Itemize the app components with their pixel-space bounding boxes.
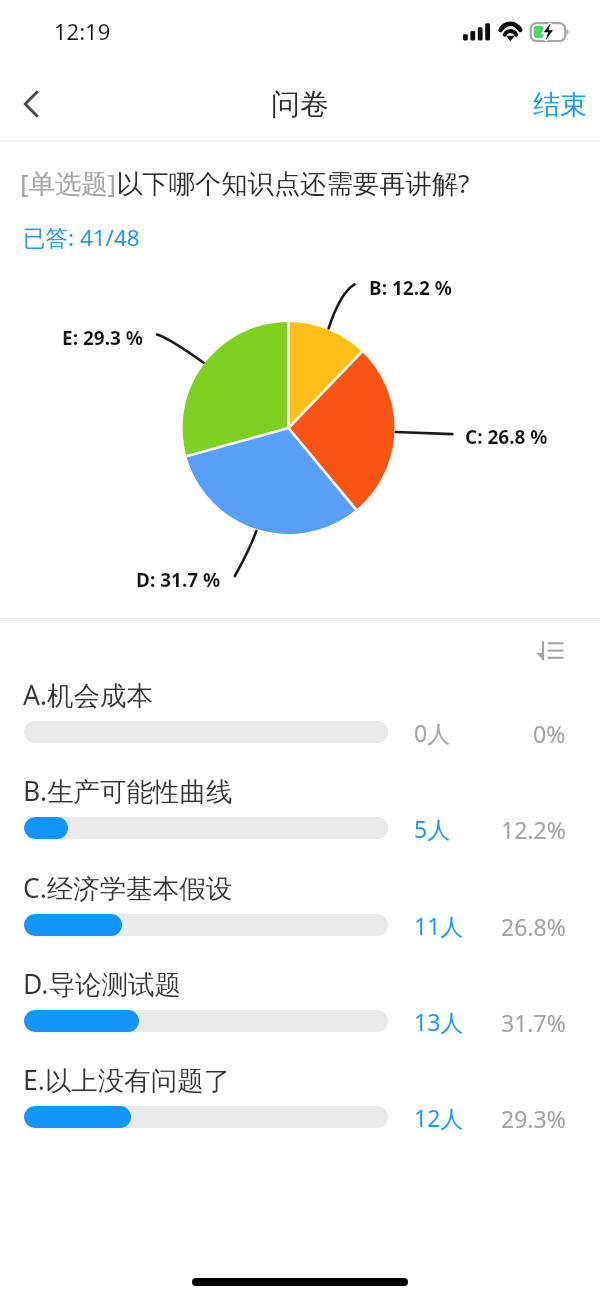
- staticText: 13人: [414, 1006, 464, 1034]
- staticText: A.机会成本: [23, 677, 154, 713]
- button[interactable]: C.经济学基本假设: [0, 865, 600, 957]
- staticText: 结束: [533, 88, 587, 122]
- staticText: 0人: [414, 717, 451, 745]
- staticText: 0%: [533, 718, 566, 746]
- staticText: 12人: [414, 1102, 464, 1130]
- staticText: B.生产可能性曲线: [23, 773, 233, 809]
- button[interactable]: A.机会成本: [0, 672, 600, 764]
- button[interactable]: 结束: [523, 64, 595, 140]
- staticText: 12.2%: [501, 814, 566, 842]
- staticText: D: 31.7 %: [136, 567, 221, 593]
- staticText: C: 26.8 %: [465, 424, 548, 450]
- button[interactable]: Sort: [519, 622, 581, 678]
- staticText: 问卷: [271, 86, 329, 123]
- staticText: B: 12.2 %: [369, 275, 452, 301]
- staticText: 已答: 41/48: [23, 222, 140, 253]
- staticText: 31.7%: [501, 1007, 566, 1035]
- staticText: C.经济学基本假设: [23, 870, 233, 906]
- staticText: E.以上没有问题了: [23, 1062, 231, 1098]
- staticText: 29.3%: [501, 1103, 566, 1131]
- staticText: 26.8%: [501, 911, 566, 939]
- button[interactable]: D.导论测试题: [0, 961, 600, 1053]
- button[interactable]: E.以上没有问题了: [0, 1057, 600, 1149]
- staticText: 12:19: [54, 16, 111, 46]
- staticText: 11人: [414, 910, 464, 938]
- button[interactable]: B.生产可能性曲线: [0, 768, 600, 860]
- staticText: D.导论测试题: [23, 966, 181, 1002]
- staticText: [单选题]以下哪个知识点还需要再讲解?: [20, 165, 470, 201]
- button[interactable]: Back: [0, 64, 76, 140]
- staticText: E: 29.3 %: [62, 325, 143, 351]
- staticText: 5人: [414, 813, 451, 841]
